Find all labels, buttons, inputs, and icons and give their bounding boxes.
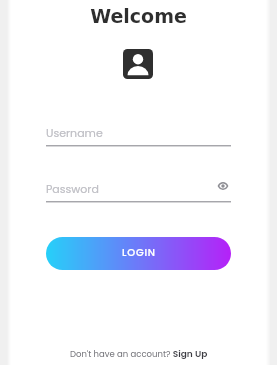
staticText: Password: [46, 181, 99, 196]
button[interactable]: Username: [46, 123, 231, 147]
button[interactable]: Password: [46, 179, 211, 203]
staticText: Welcome: [90, 5, 187, 27]
button[interactable]: Don't have an account? Sign Up: [70, 348, 208, 361]
staticText: LOGIN: [122, 245, 156, 259]
button[interactable]: LOGIN: [46, 237, 231, 270]
staticText: Don't have an account? Sign Up: [70, 348, 208, 361]
button[interactable]: Show password: [214, 177, 231, 194]
staticText: Username: [46, 125, 103, 140]
